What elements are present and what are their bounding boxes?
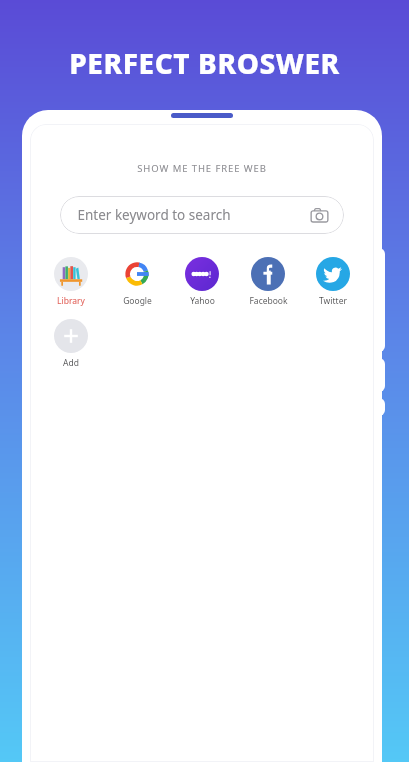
staticText: Yahoo [190,295,215,307]
staticText: Add [63,357,79,369]
button[interactable]: Library [48,257,94,307]
button[interactable]: Facebook [245,257,291,307]
button[interactable]: Google [114,257,160,307]
button[interactable]: Yahoo [179,257,225,307]
button[interactable]: Enter keyword to search [60,196,344,234]
staticText: PERFECT BROSWER [69,44,340,82]
button[interactable]: Search by camera [309,205,329,225]
button[interactable]: Add [48,319,94,369]
staticText: SHOW ME THE FREE WEB [137,162,267,175]
staticText: Google [123,295,152,307]
staticText: Enter keyword to search [77,206,231,224]
staticText: Twitter [319,295,347,307]
staticText: Library [57,295,85,307]
staticText: Facebook [249,295,288,307]
button[interactable]: Twitter [310,257,356,307]
